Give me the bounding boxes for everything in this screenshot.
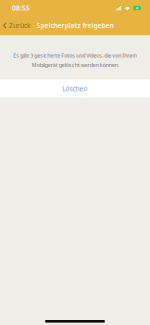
- staticText: Es gibt 3 gesicherte Fotos und Videos, d…: [13, 52, 137, 69]
- staticText: Speicherplatz freigeben: [36, 21, 113, 30]
- button[interactable]: Löschen: [0, 80, 150, 98]
- button[interactable]: Zurück: [0, 17, 31, 34]
- staticText: 08:55: [12, 4, 30, 12]
- staticText: Zurück: [9, 21, 31, 30]
- staticText: Löschen: [62, 84, 87, 93]
